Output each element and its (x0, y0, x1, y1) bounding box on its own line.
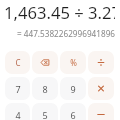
button[interactable]: % (60, 51, 86, 74)
button[interactable] (32, 51, 58, 74)
button[interactable]: 4 (5, 103, 30, 120)
button[interactable]: 6 (60, 103, 86, 120)
staticText: 6 (70, 109, 76, 120)
staticText: C (15, 57, 21, 68)
staticText: 7 (15, 83, 21, 95)
staticText: = 447.5382262996941896 (4, 28, 115, 39)
staticText: 5 (42, 109, 48, 120)
button[interactable]: 8 (32, 77, 58, 100)
button[interactable] (88, 77, 114, 100)
staticText: 4 (15, 109, 21, 120)
staticText: 1,463.45 ÷ 3.27 (4, 1, 115, 24)
button[interactable] (88, 103, 114, 120)
button[interactable]: 9 (60, 77, 86, 100)
button[interactable]: 7 (5, 77, 30, 100)
staticText: % (70, 57, 77, 68)
button[interactable]: C (5, 51, 30, 74)
button[interactable] (88, 51, 114, 74)
button[interactable]: 5 (32, 103, 58, 120)
staticText: 9 (70, 83, 76, 95)
staticText: 8 (42, 83, 48, 95)
